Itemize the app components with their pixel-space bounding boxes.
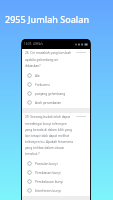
staticText: Laporkan [76, 51, 87, 54]
staticText: Pembelauan bunyi [35, 180, 63, 184]
button[interactable]: Pantulan bunyi [25, 159, 88, 168]
staticText: panjang gelombang [35, 92, 66, 96]
button[interactable]: Arah perambatan [25, 98, 88, 107]
button[interactable]: Ala [25, 71, 88, 80]
staticText: Interferens bunyi [35, 189, 61, 193]
staticText: 14:05 4.8Kb/s [24, 42, 43, 46]
staticText: 29. Seorang budak telah dapat mendengar … [25, 115, 74, 156]
staticText: Ala [35, 74, 40, 78]
staticText: 2955 Jumlah Soalan [5, 13, 90, 25]
button[interactable]: Interferens bunyi [25, 186, 88, 195]
staticText: Arah perambatan [35, 101, 62, 105]
button[interactable]: Pembelauan bunyi [25, 177, 88, 186]
button[interactable]: panjang gelombang [25, 89, 88, 98]
staticText: Laporkan [76, 115, 87, 118]
staticText: Frekuensi [35, 83, 50, 87]
staticText: Pantulan bunyi [35, 162, 58, 166]
staticText: Pembiasan bunyi [35, 171, 61, 175]
staticText: 26. Ciri manakah yang berubah apabila ge… [25, 51, 74, 68]
button[interactable]: Laporkan [75, 115, 88, 118]
button[interactable]: Pembiasan bunyi [25, 168, 88, 177]
button[interactable]: Laporkan [75, 51, 88, 54]
button[interactable]: Frekuensi [25, 80, 88, 89]
